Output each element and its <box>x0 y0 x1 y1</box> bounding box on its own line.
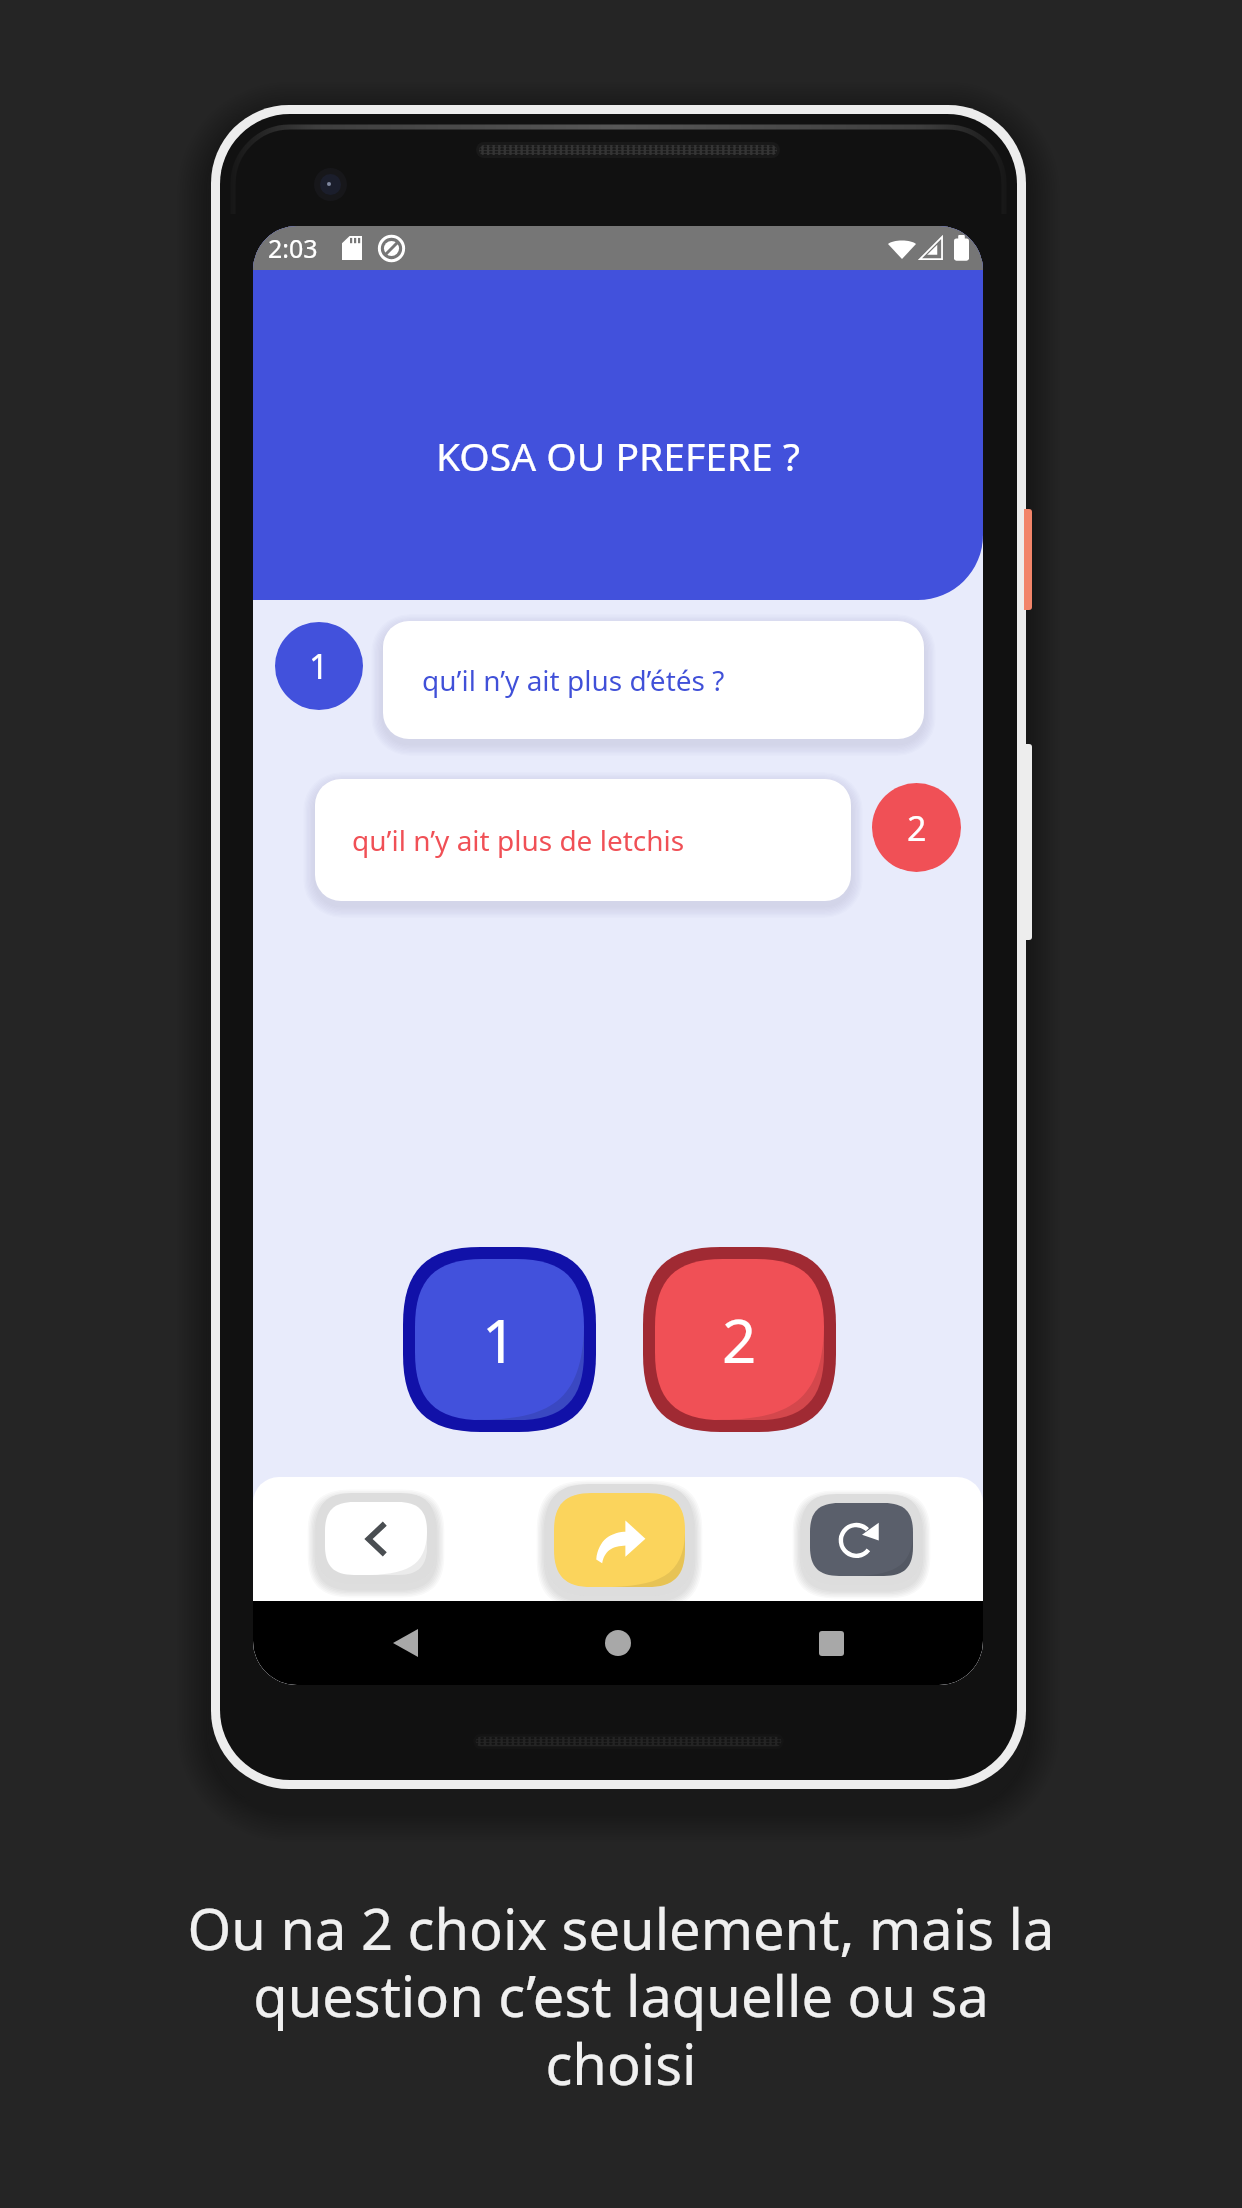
staticText: 1 <box>309 643 329 689</box>
staticText: KOSA OU PREFERE ? <box>436 429 800 482</box>
button[interactable]: qu’il n’y ait plus d’étés ? <box>383 621 924 739</box>
staticText: 2 <box>907 805 927 851</box>
button[interactable]: Restart <box>801 1494 922 1585</box>
staticText: qu’il n’y ait plus de letchis <box>352 821 685 859</box>
button[interactable]: 2 <box>872 783 961 872</box>
button[interactable]: Back <box>393 1629 418 1657</box>
staticText: Ou na 2 choix seulement, mais la questio… <box>180 1890 1062 2102</box>
staticText: 1 <box>482 1299 517 1381</box>
staticText: 2:03 <box>268 231 318 265</box>
staticText: qu’il n’y ait plus d’étés ? <box>422 661 725 699</box>
button[interactable]: Choice 2 <box>643 1247 836 1432</box>
button[interactable]: Home <box>605 1630 631 1656</box>
staticText: 2 <box>722 1299 757 1381</box>
button[interactable]: Recent apps <box>819 1631 844 1656</box>
button[interactable]: qu’il n’y ait plus de letchis <box>315 779 851 901</box>
button[interactable]: 1 <box>275 622 363 710</box>
button[interactable]: Choice 1 <box>403 1247 596 1432</box>
button[interactable]: Next question <box>545 1484 694 1596</box>
button[interactable]: Previous question <box>316 1493 436 1584</box>
